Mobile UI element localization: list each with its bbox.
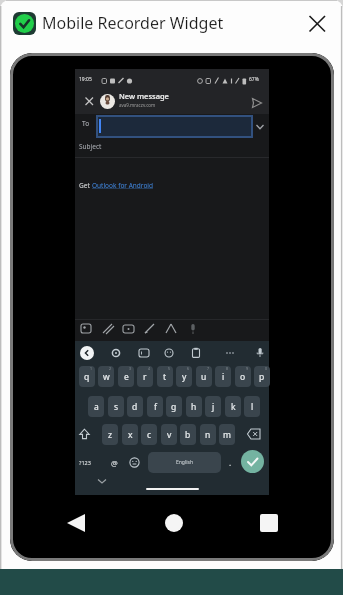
staticText: n: [205, 429, 211, 441]
staticText: l: [251, 401, 254, 413]
button[interactable]: [76, 424, 93, 445]
staticText: @: [111, 458, 118, 468]
button[interactable]: f: [147, 396, 163, 417]
staticText: q: [84, 371, 90, 383]
staticText: b: [185, 429, 191, 441]
staticText: Mobile Recorder Widget: [42, 12, 224, 34]
button[interactable]: [241, 450, 264, 473]
staticText: m: [223, 429, 231, 441]
staticText: 4: [148, 366, 151, 371]
button[interactable]: [158, 508, 189, 538]
button[interactable]: e: [118, 366, 134, 387]
button[interactable]: [303, 10, 331, 38]
staticText: 6: [187, 366, 190, 371]
staticText: ava9.mraczv.com: [119, 102, 156, 108]
staticText: 8: [226, 366, 229, 371]
staticText: .: [229, 457, 232, 468]
staticText: 1: [90, 366, 93, 371]
staticText: 0: [265, 366, 268, 371]
staticText: u: [201, 371, 207, 383]
staticText: v: [167, 429, 172, 441]
staticText: ?123: [79, 459, 91, 466]
button[interactable]: Outlook for Android: [92, 181, 154, 190]
button[interactable]: u: [196, 366, 212, 387]
button[interactable]: v: [161, 424, 177, 445]
staticText: 5: [168, 366, 171, 371]
staticText: 67%: [249, 76, 259, 83]
button[interactable]: [249, 95, 265, 111]
button[interactable]: k: [225, 396, 241, 417]
staticText: New message: [119, 91, 169, 101]
button[interactable]: d: [127, 396, 143, 417]
staticText: j: [212, 401, 215, 413]
button[interactable]: [60, 508, 92, 538]
staticText: 19:05: [79, 76, 92, 83]
staticText: s: [114, 401, 119, 413]
button[interactable]: s: [108, 396, 124, 417]
button[interactable]: p: [254, 366, 270, 387]
button[interactable]: i: [215, 366, 231, 387]
button[interactable]: g: [166, 396, 182, 417]
staticText: Outlook for Android: [92, 181, 154, 190]
staticText: y: [182, 371, 187, 383]
button[interactable]: w: [98, 366, 114, 387]
staticText: o: [240, 371, 246, 383]
staticText: To: [82, 119, 90, 128]
button[interactable]: y: [176, 366, 192, 387]
staticText: d: [132, 401, 138, 413]
staticText: 2: [109, 366, 112, 371]
staticText: 9: [246, 366, 249, 371]
staticText: z: [108, 429, 112, 441]
staticText: g: [171, 401, 177, 413]
staticText: Get: [79, 181, 90, 190]
button[interactable]: h: [186, 396, 202, 417]
staticText: h: [191, 401, 197, 413]
button[interactable]: z: [102, 424, 118, 445]
staticText: English: [176, 459, 194, 466]
staticText: i: [222, 371, 225, 383]
button[interactable]: [75, 140, 269, 157]
button[interactable]: ?123: [76, 452, 93, 473]
button[interactable]: m: [219, 424, 235, 445]
staticText: p: [259, 371, 265, 383]
staticText: e: [124, 371, 129, 383]
staticText: w: [103, 371, 110, 383]
staticText: 3: [129, 366, 132, 371]
staticText: 7: [207, 366, 210, 371]
button[interactable]: n: [200, 424, 216, 445]
button[interactable]: c: [141, 424, 157, 445]
button[interactable]: [80, 346, 94, 360]
button[interactable]: [96, 115, 253, 138]
button[interactable]: [126, 452, 143, 473]
button[interactable]: j: [205, 396, 221, 417]
staticText: f: [154, 401, 157, 413]
staticText: c: [147, 429, 152, 441]
staticText: x: [128, 429, 133, 441]
button[interactable]: .: [224, 452, 237, 473]
button[interactable]: l: [244, 396, 260, 417]
button[interactable]: English: [148, 452, 221, 473]
staticText: a: [94, 401, 99, 413]
button[interactable]: @: [106, 452, 122, 473]
button[interactable]: o: [235, 366, 251, 387]
button[interactable]: b: [180, 424, 196, 445]
button[interactable]: q: [79, 366, 95, 387]
button[interactable]: [81, 93, 97, 109]
staticText: t: [163, 371, 167, 383]
button[interactable]: x: [122, 424, 138, 445]
button[interactable]: [245, 424, 263, 445]
staticText: k: [231, 401, 236, 413]
button[interactable]: t: [157, 366, 173, 387]
button[interactable]: r: [137, 366, 153, 387]
staticText: r: [143, 371, 147, 383]
button[interactable]: a: [88, 396, 104, 417]
staticText: Subject: [79, 142, 102, 151]
button[interactable]: [252, 508, 285, 538]
